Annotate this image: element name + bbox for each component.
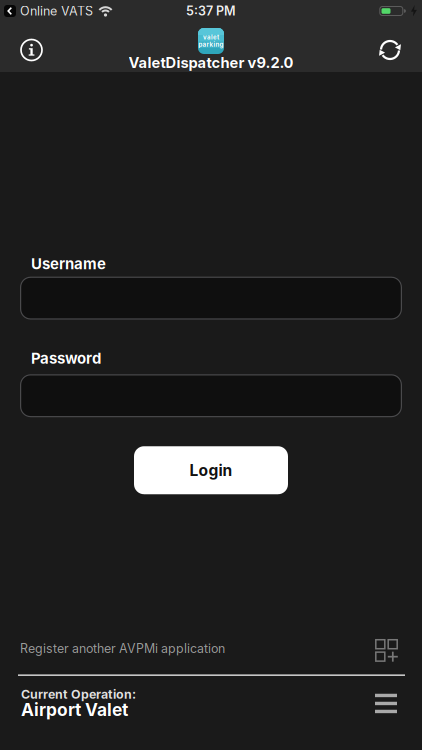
button[interactable] [0, 374, 422, 417]
staticText: Login [189, 461, 232, 479]
button[interactable]: Register another AVPMi application [0, 639, 422, 662]
staticText: Password [31, 350, 101, 367]
staticText: Register another AVPMi application [20, 641, 225, 656]
staticText: Online VATS [20, 4, 93, 18]
staticText: ValetDispatcher v9.2.0 [128, 54, 293, 71]
staticText: Airport Valet [21, 700, 128, 720]
staticText: Username [31, 255, 106, 273]
button[interactable]: Login [134, 446, 288, 494]
staticText: valet [203, 34, 219, 41]
button[interactable] [378, 38, 422, 62]
button[interactable] [375, 694, 422, 713]
button[interactable] [0, 39, 42, 60]
button[interactable] [0, 277, 422, 320]
staticText: Current Operation: [21, 687, 136, 701]
staticText: 5:37 PM [186, 4, 236, 18]
staticText: parking [198, 41, 223, 48]
